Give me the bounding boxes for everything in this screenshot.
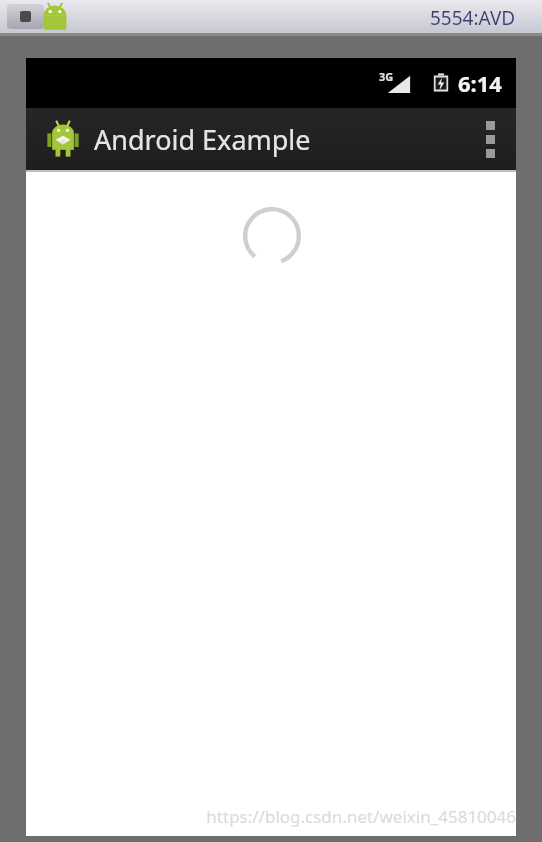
staticText: 5554:AVD (430, 5, 516, 31)
staticText: Android Example (94, 121, 311, 158)
staticText: 3G (379, 69, 394, 84)
button[interactable]: Window menu (7, 4, 44, 29)
staticText: https://blog.csdn.net/weixin_45810046 (206, 805, 516, 828)
staticText: 6:14 (458, 68, 502, 98)
button[interactable]: More options (464, 108, 516, 170)
